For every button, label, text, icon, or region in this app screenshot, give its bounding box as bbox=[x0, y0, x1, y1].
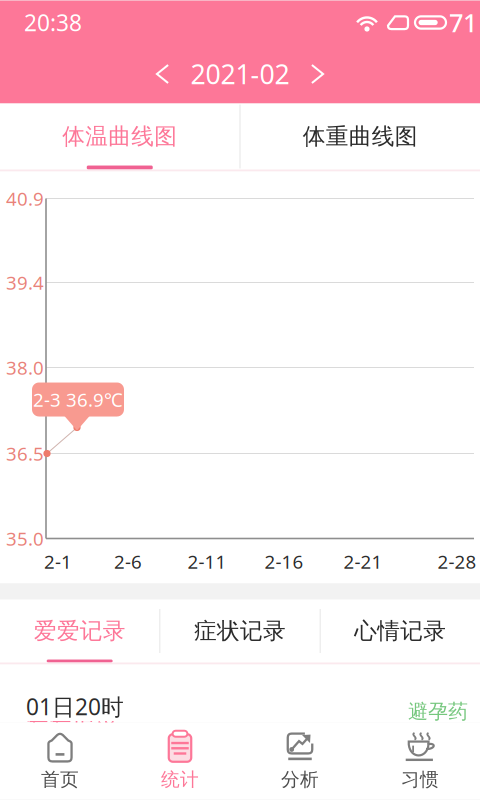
staticText: 2-28 bbox=[437, 549, 476, 574]
button[interactable]: Previous month bbox=[147, 59, 177, 89]
staticText: 20:38 bbox=[24, 7, 82, 37]
button[interactable]: 习惯 bbox=[360, 722, 480, 799]
button[interactable]: 01日20时 bbox=[0, 661, 480, 721]
staticText: 2021-02 bbox=[190, 56, 289, 92]
staticText: 爱爱记录 bbox=[34, 617, 126, 645]
staticText: 体温曲线图 bbox=[62, 123, 177, 150]
button[interactable]: Next month bbox=[302, 59, 332, 89]
staticText: 体重曲线图 bbox=[303, 123, 418, 150]
button[interactable]: 体重曲线图 bbox=[240, 103, 480, 169]
staticText: 症状记录 bbox=[194, 617, 286, 645]
staticText: 36.5 bbox=[6, 441, 44, 466]
staticText: 2-16 bbox=[264, 549, 303, 574]
staticText: 38.0 bbox=[6, 355, 44, 380]
staticText: 2-6 bbox=[114, 549, 142, 574]
staticText: 01日20时 bbox=[26, 691, 124, 721]
staticText: 2-21 bbox=[343, 549, 382, 574]
staticText: 分析 bbox=[281, 768, 319, 791]
staticText: 爱爱记录 bbox=[26, 709, 118, 736]
staticText: 2-3 36.9℃ bbox=[33, 387, 123, 412]
staticText: 统计 bbox=[161, 768, 199, 791]
staticText: 习惯 bbox=[401, 768, 439, 791]
button[interactable]: 首页 bbox=[0, 722, 120, 799]
button[interactable]: 心情记录 bbox=[321, 599, 480, 662]
staticText: 心情记录 bbox=[354, 617, 446, 645]
staticText: 2-1 bbox=[44, 549, 72, 574]
button[interactable]: 爱爱记录 bbox=[0, 599, 159, 662]
button[interactable]: 体温曲线图 bbox=[0, 103, 239, 169]
staticText: 2-11 bbox=[187, 549, 226, 574]
staticText: 39.4 bbox=[6, 270, 44, 295]
button[interactable]: 症状记录 bbox=[160, 599, 320, 662]
staticText: 首页 bbox=[41, 768, 79, 791]
staticText: 35.0 bbox=[6, 526, 44, 551]
button[interactable]: 分析 bbox=[240, 722, 360, 799]
staticText: 40.9 bbox=[6, 186, 44, 211]
button[interactable]: 统计 bbox=[120, 722, 240, 799]
staticText: 避孕药 bbox=[408, 699, 468, 724]
staticText: 71 bbox=[449, 6, 477, 39]
